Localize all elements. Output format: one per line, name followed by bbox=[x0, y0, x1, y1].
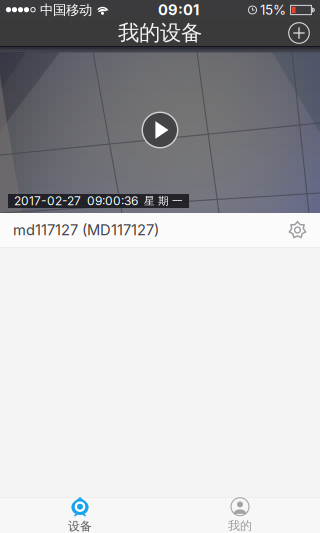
staticText: 中国移动 bbox=[40, 2, 92, 18]
staticText: 星 期 一 bbox=[144, 194, 183, 208]
staticText: 设备 bbox=[68, 519, 92, 533]
staticText: 09:01 bbox=[158, 1, 199, 19]
button[interactable]: Add device bbox=[278, 20, 320, 46]
button[interactable]: Play live video bbox=[0, 47, 320, 213]
staticText: 15% bbox=[260, 2, 286, 18]
button[interactable]: md117127 (MD117127) bbox=[0, 213, 320, 247]
staticText: md117127 (MD117127) bbox=[13, 221, 159, 239]
staticText: 我的 bbox=[228, 518, 252, 533]
staticText: 我的设备 bbox=[118, 20, 202, 46]
button[interactable]: 我的 bbox=[160, 498, 320, 533]
staticText: 09:00:36 bbox=[87, 194, 138, 208]
staticText: 2017-02-27 bbox=[14, 194, 81, 208]
button[interactable]: 设备 bbox=[0, 498, 160, 533]
